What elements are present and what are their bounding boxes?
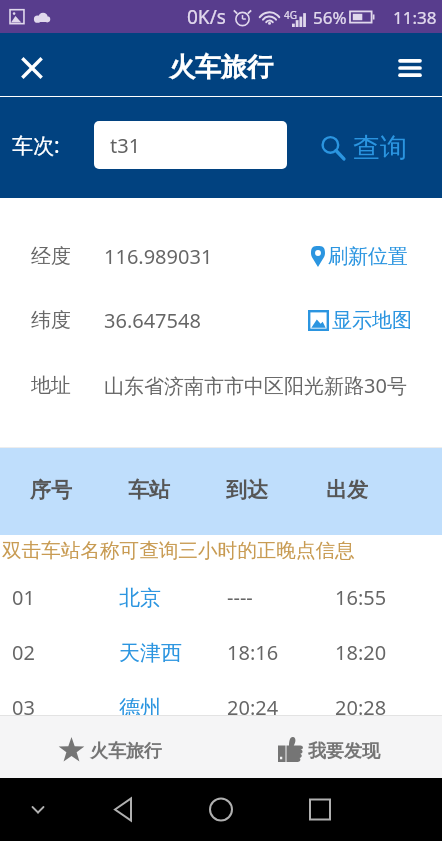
staticText: 序号	[30, 477, 72, 503]
staticText: 山东省济南市市中区阳光新路30号	[104, 372, 407, 399]
button[interactable]: Close	[0, 33, 64, 96]
staticText: 车次:	[12, 131, 60, 160]
button[interactable]: 火车旅行	[58, 716, 162, 778]
staticText: 36.647548	[104, 307, 201, 334]
staticText: 03	[12, 694, 35, 721]
staticText: 16:55	[335, 584, 387, 611]
staticText: 双击车站名称可查询三小时的正晚点信息	[2, 538, 355, 563]
staticText: 20:24	[227, 694, 279, 721]
button[interactable]: 01	[0, 570, 442, 625]
staticText: 18:20	[335, 639, 387, 666]
button[interactable]: 刷新位置	[311, 224, 408, 288]
staticText: 显示地图	[332, 308, 412, 333]
staticText: 到达	[226, 477, 268, 503]
button[interactable]: 显示地图	[308, 288, 412, 352]
staticText: 出发	[326, 477, 368, 503]
staticText: 我要发现	[308, 740, 380, 763]
staticText: 查询	[353, 131, 407, 165]
button[interactable]: 03	[0, 680, 442, 735]
staticText: 纬度	[31, 308, 71, 333]
staticText: 火车旅行	[169, 51, 273, 84]
staticText: 火车旅行	[90, 740, 162, 763]
staticText: 56%	[313, 6, 347, 29]
staticText: 01	[12, 584, 35, 611]
staticText: 地址	[31, 373, 71, 398]
staticText: 116.989031	[104, 243, 213, 270]
button[interactable]: 02	[0, 625, 442, 680]
staticText: 德州	[119, 695, 161, 721]
button[interactable]: t31	[94, 121, 287, 169]
staticText: 02	[12, 639, 35, 666]
button[interactable]: 我要发现	[278, 716, 380, 778]
staticText: 北京	[119, 585, 161, 611]
staticText: ----	[227, 584, 253, 611]
staticText: 20:28	[335, 694, 387, 721]
staticText: t31	[110, 132, 141, 159]
staticText: 11:38	[393, 6, 437, 29]
staticText: 18:16	[227, 639, 279, 666]
staticText: 天津西	[119, 640, 182, 666]
button[interactable]: 查询	[304, 97, 439, 198]
staticText: 4G	[284, 8, 297, 22]
button[interactable]: Menu	[378, 33, 442, 96]
staticText: 经度	[31, 244, 71, 269]
staticText: 0K/s	[187, 4, 226, 30]
staticText: 刷新位置	[328, 244, 408, 269]
staticText: 车站	[128, 477, 170, 503]
